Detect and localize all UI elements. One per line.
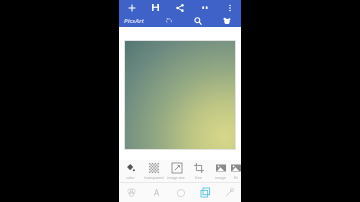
button[interactable]: Search: [191, 14, 204, 27]
button[interactable]: transparent: [142, 160, 165, 182]
button[interactable]: Layers: [193, 183, 217, 202]
button[interactable]: Effects: [220, 14, 233, 27]
button[interactable]: PicsArt: [123, 17, 145, 25]
staticText: fit: [234, 175, 238, 180]
staticText: PicsArt: [124, 17, 144, 25]
button[interactable]: More options: [223, 1, 236, 14]
button[interactable]: image size: [165, 160, 187, 182]
button[interactable]: color: [119, 160, 142, 182]
staticText: image size: [167, 175, 185, 180]
button[interactable]: fit: [231, 160, 241, 182]
button[interactable]: [125, 41, 235, 149]
staticText: color: [126, 175, 135, 180]
button[interactable]: image: [209, 160, 231, 182]
staticText: A: [154, 187, 160, 198]
button[interactable]: Save: [149, 1, 162, 14]
button[interactable]: Text: [144, 183, 169, 202]
button[interactable]: Undo: [162, 14, 175, 27]
button[interactable]: Share: [173, 1, 186, 14]
button[interactable]: Effects: [119, 183, 144, 202]
staticText: transparent: [144, 175, 164, 180]
staticText: free: [195, 175, 202, 180]
staticText: image: [215, 175, 226, 180]
button[interactable]: Tools: [217, 183, 241, 202]
button[interactable]: Shape: [169, 183, 193, 202]
button[interactable]: free: [187, 160, 209, 182]
button[interactable]: Text: [198, 1, 211, 14]
button[interactable]: Add: [125, 1, 138, 14]
